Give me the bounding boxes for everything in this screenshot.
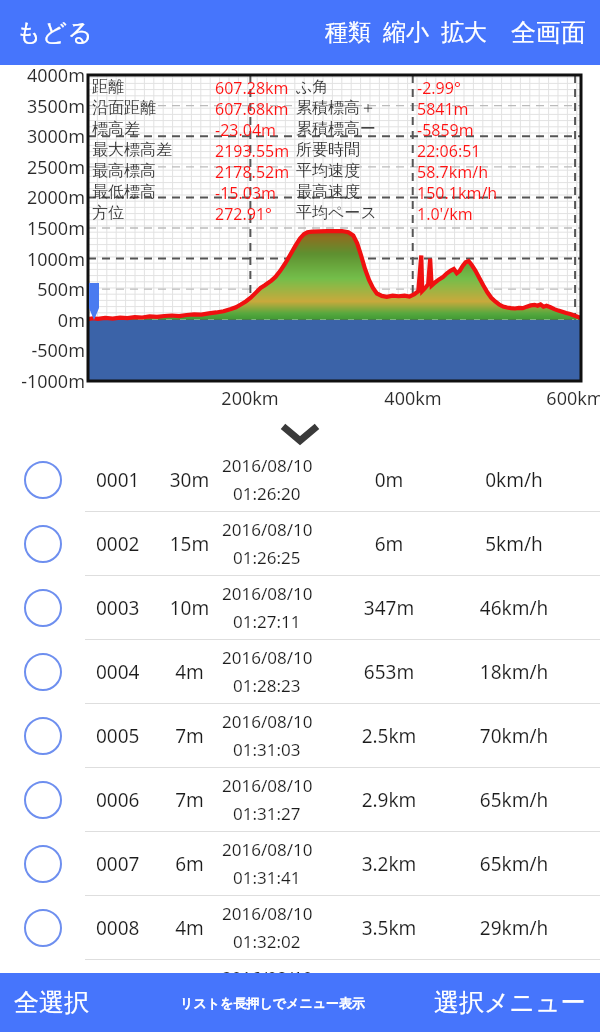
staticText: 70km/h — [460, 723, 568, 749]
button[interactable]: 0001 — [0, 448, 600, 511]
staticText: 15m — [162, 531, 217, 557]
button[interactable]: もどる — [6, 11, 103, 54]
staticText: ふ角 — [296, 77, 417, 97]
staticText: 200km — [210, 386, 290, 411]
staticText: 0002 — [96, 531, 140, 557]
button[interactable]: 全画面 — [505, 11, 592, 54]
staticText: 4000m — [0, 63, 85, 88]
staticText: 0003 — [96, 595, 140, 621]
staticText: 沿面距離 — [92, 98, 215, 118]
staticText: 選択メニュー — [434, 987, 586, 1018]
staticText: 4m — [162, 659, 217, 685]
staticText: 5841m — [417, 98, 469, 119]
staticText: 3.2km — [348, 851, 430, 877]
staticText: 01:32:02 — [233, 930, 301, 953]
staticText: 2178.52m — [215, 161, 290, 182]
button[interactable]: 0008 — [0, 896, 600, 959]
staticText: 2016/08/10 — [222, 582, 313, 605]
staticText: 全選択 — [14, 987, 89, 1018]
button[interactable]: 全選択 — [6, 981, 97, 1024]
staticText: -2.99° — [417, 77, 461, 98]
staticText: 2500m — [0, 155, 85, 180]
button[interactable]: 縮小 — [377, 12, 435, 53]
staticText: 500m — [0, 277, 85, 302]
staticText: 平均ペース — [296, 203, 417, 223]
staticText: 46km/h — [460, 595, 568, 621]
staticText: 2.9km — [348, 787, 430, 813]
staticText: 347m — [348, 595, 430, 621]
staticText: 縮小 — [383, 18, 429, 47]
staticText: 01:27:11 — [233, 610, 301, 633]
staticText: 方位 — [92, 203, 215, 223]
staticText: 30m — [162, 467, 217, 493]
staticText: 2193.55m — [215, 140, 290, 161]
staticText: 距離 — [92, 77, 215, 97]
staticText: 2016/08/10 — [222, 710, 313, 733]
staticText: 607.28km — [215, 77, 289, 98]
staticText: 607.68km — [215, 98, 289, 119]
staticText: 01:26:25 — [233, 546, 301, 569]
button[interactable]: 0007 — [0, 832, 600, 895]
staticText: 2016/08/10 — [222, 838, 313, 861]
staticText: 7m — [162, 723, 217, 749]
staticText: 3.9km — [348, 979, 430, 1005]
staticText: 0006 — [96, 787, 140, 813]
staticText: 1000m — [0, 247, 85, 272]
staticText: 2016/08/10 — [222, 774, 313, 797]
staticText: 標高差 — [92, 119, 215, 139]
staticText: 1.0'/km — [417, 203, 473, 224]
staticText: 種類 — [325, 18, 371, 47]
staticText: 2016/08/10 — [222, 902, 313, 925]
staticText: 653m — [348, 659, 430, 685]
staticText: 0m — [348, 467, 430, 493]
staticText: 最低標高 — [92, 182, 215, 202]
staticText: 0m — [0, 308, 85, 333]
staticText: 1500m — [0, 216, 85, 241]
staticText: 3000m — [0, 124, 85, 149]
staticText: 所要時間 — [296, 140, 417, 160]
button[interactable]: Expand — [273, 412, 327, 454]
staticText: 4m — [162, 915, 217, 941]
staticText: 累積標高＋ — [296, 98, 417, 118]
staticText: 累積標高ー — [296, 119, 417, 139]
staticText: 2016/08/10 — [222, 966, 313, 989]
staticText: 01:28:23 — [233, 674, 301, 697]
staticText: 0005 — [96, 723, 140, 749]
button[interactable]: 0009 — [0, 960, 600, 1023]
button[interactable]: 0004 — [0, 640, 600, 703]
staticText: 全画面 — [511, 17, 586, 48]
staticText: 3.5km — [348, 915, 430, 941]
staticText: 7m — [162, 787, 217, 813]
staticText: 拡大 — [441, 18, 487, 47]
button[interactable]: 0002 — [0, 512, 600, 575]
staticText: 0001 — [96, 467, 140, 493]
button[interactable]: 0003 — [0, 576, 600, 639]
staticText: 5km/h — [460, 531, 568, 557]
staticText: 6m — [162, 851, 217, 877]
button[interactable]: 0005 — [0, 704, 600, 767]
staticText: 400km — [373, 386, 453, 411]
staticText: 3500m — [0, 94, 85, 119]
staticText: 22:06:51 — [417, 140, 481, 161]
staticText: 5m — [162, 979, 217, 1005]
staticText: 最大標高差 — [92, 140, 215, 160]
staticText: 29km/h — [460, 915, 568, 941]
button[interactable]: 選択メニュー — [426, 981, 594, 1024]
button[interactable]: 種類 — [319, 12, 377, 53]
staticText: 2.5km — [348, 723, 430, 749]
staticText: 01:31:27 — [233, 802, 301, 825]
staticText: -5859m — [417, 119, 474, 140]
button[interactable]: 0006 — [0, 768, 600, 831]
staticText: 150.1km/h — [417, 182, 498, 203]
button[interactable]: 拡大 — [435, 12, 493, 53]
staticText: 6m — [348, 531, 430, 557]
staticText: 600km — [535, 386, 600, 411]
staticText: 01:31:41 — [233, 866, 301, 889]
staticText: 18km/h — [460, 659, 568, 685]
staticText: 0km/h — [460, 467, 568, 493]
staticText: -15.03m — [215, 182, 277, 203]
staticText: 10m — [162, 595, 217, 621]
staticText: リストを長押しでメニュー表示 — [180, 995, 365, 1011]
staticText: 最高標高 — [92, 161, 215, 181]
